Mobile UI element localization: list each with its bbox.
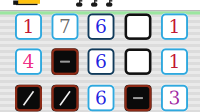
button[interactable]: Pencil <box>13 0 40 7</box>
button[interactable]: 4 <box>15 48 42 75</box>
staticText: 1 <box>168 16 180 37</box>
button[interactable]: 6 <box>87 85 114 111</box>
button[interactable]: 7 <box>51 13 78 40</box>
button[interactable]: Eighth note <box>91 0 98 7</box>
button[interactable] <box>51 85 78 111</box>
button[interactable]: 6 <box>87 48 114 75</box>
staticText: 1 <box>168 51 180 72</box>
button[interactable] <box>15 85 42 111</box>
staticText: 3 <box>168 87 180 109</box>
staticText: 6 <box>95 16 107 37</box>
button[interactable]: 1 <box>161 48 188 75</box>
button[interactable] <box>124 48 151 75</box>
staticText: 7 <box>59 16 71 37</box>
button[interactable] <box>124 85 151 111</box>
button[interactable]: Eighth note <box>106 0 113 7</box>
button[interactable] <box>124 13 151 40</box>
staticText: 6 <box>95 87 107 109</box>
button[interactable]: 6 <box>87 13 114 40</box>
button[interactable] <box>51 48 78 75</box>
staticText: 4 <box>22 51 34 72</box>
button[interactable]: 1 <box>15 13 42 40</box>
button[interactable]: 3 <box>161 85 188 111</box>
staticText: 6 <box>95 51 107 72</box>
staticText: 1 <box>22 16 34 37</box>
button[interactable]: Eighth note <box>76 0 83 7</box>
button[interactable]: 1 <box>161 13 188 40</box>
